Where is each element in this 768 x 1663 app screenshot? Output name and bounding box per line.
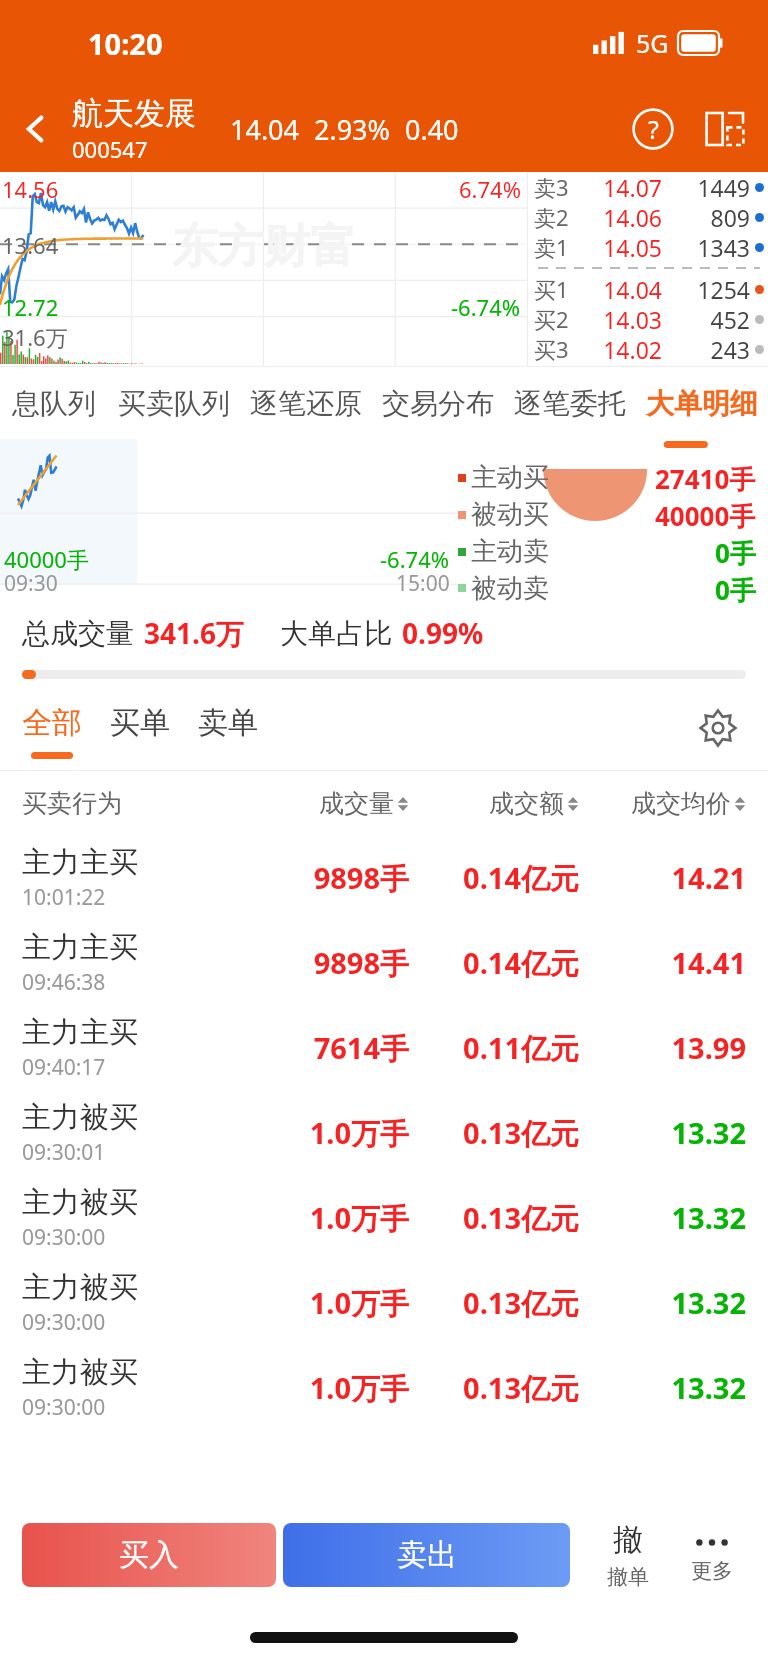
button[interactable]: 主力被买 bbox=[0, 1260, 768, 1345]
staticText: 撤单 bbox=[607, 1564, 649, 1590]
staticText: 9898手 bbox=[239, 943, 409, 983]
staticText: 主力主买 bbox=[22, 929, 138, 966]
button[interactable]: 卖单 bbox=[198, 686, 258, 770]
staticText: 0.13亿元 bbox=[409, 1198, 579, 1238]
button[interactable]: 逐笔还原 bbox=[240, 367, 372, 439]
staticText: 大单占比 bbox=[280, 616, 392, 651]
button[interactable]: Layout bbox=[694, 98, 756, 160]
staticText: 成交量 bbox=[319, 788, 394, 819]
button[interactable]: 买入 bbox=[22, 1523, 276, 1587]
button[interactable]: 卖1 bbox=[534, 232, 764, 262]
staticText: ? bbox=[648, 112, 659, 146]
button[interactable]: 主力被买 bbox=[0, 1175, 768, 1260]
staticText: 14.07 bbox=[586, 172, 662, 202]
button[interactable]: 息队列 bbox=[0, 367, 108, 439]
staticText: 6.74% bbox=[459, 174, 521, 204]
staticText: 09:30:01 bbox=[22, 1138, 106, 1167]
staticText: 逐笔委托 bbox=[514, 386, 626, 421]
staticText: 15:00 bbox=[396, 569, 450, 598]
staticText: 0手 bbox=[715, 535, 756, 568]
staticText: 452 bbox=[662, 304, 750, 334]
button[interactable]: 卖出 bbox=[283, 1523, 570, 1587]
staticText: 主力被买 bbox=[22, 1269, 138, 1306]
staticText: 被动买 bbox=[471, 498, 549, 531]
button[interactable]: 卖3 bbox=[534, 172, 764, 202]
staticText: 13.32 bbox=[579, 1113, 746, 1152]
button[interactable]: Help bbox=[622, 98, 684, 160]
button[interactable]: 买卖队列 bbox=[108, 367, 240, 439]
staticText: 1.0万手 bbox=[239, 1283, 409, 1323]
staticText: 0.99% bbox=[402, 614, 484, 652]
staticText: 243 bbox=[662, 334, 750, 364]
button[interactable]: 更多 bbox=[670, 1499, 754, 1611]
staticText: 被动卖 bbox=[471, 572, 549, 604]
staticText: 14.03 bbox=[586, 304, 662, 334]
staticText: 大单明细 bbox=[646, 386, 758, 421]
staticText: -6.74% bbox=[380, 544, 450, 574]
staticText: 09:30:00 bbox=[22, 1308, 106, 1337]
staticText: 09:46:38 bbox=[22, 968, 106, 997]
staticText: 0.13亿元 bbox=[409, 1113, 579, 1153]
button[interactable]: 买1 bbox=[534, 274, 764, 304]
staticText: 14.41 bbox=[579, 943, 746, 982]
button[interactable]: 买2 bbox=[534, 304, 764, 334]
staticText: 交易分布 bbox=[382, 386, 494, 421]
button[interactable]: Back bbox=[0, 86, 72, 172]
staticText: 卖2 bbox=[534, 202, 586, 232]
button[interactable]: 被动卖 bbox=[458, 572, 756, 604]
staticText: 息队列 bbox=[12, 386, 96, 421]
staticText: 主力被买 bbox=[22, 1354, 138, 1391]
staticText: 2.93% bbox=[314, 111, 391, 148]
staticText: 13.99 bbox=[579, 1028, 746, 1067]
button[interactable]: 主力被买 bbox=[0, 1345, 768, 1430]
staticText: 1.0万手 bbox=[239, 1113, 409, 1153]
staticText: 主力被买 bbox=[22, 1099, 138, 1136]
button[interactable]: 成交额 bbox=[409, 788, 579, 819]
button[interactable]: 成交均价 bbox=[579, 788, 746, 819]
staticText: 全部 bbox=[22, 704, 82, 742]
button[interactable]: 买3 bbox=[534, 334, 764, 364]
staticText: 0.13亿元 bbox=[409, 1283, 579, 1323]
button[interactable]: 主力主买 bbox=[0, 920, 768, 1005]
staticText: 13.32 bbox=[579, 1283, 746, 1322]
staticText: 0.14亿元 bbox=[409, 943, 579, 983]
button[interactable]: Settings bbox=[690, 700, 746, 756]
button[interactable]: 卖2 bbox=[534, 202, 764, 232]
staticText: 买3 bbox=[534, 334, 586, 364]
staticText: 13.64 bbox=[2, 230, 59, 260]
staticText: 5G bbox=[636, 26, 669, 60]
staticText: 0.13亿元 bbox=[409, 1368, 579, 1408]
button[interactable]: 被动买 bbox=[458, 498, 756, 531]
button[interactable]: 买单 bbox=[110, 686, 170, 770]
staticText: 买单 bbox=[110, 704, 170, 742]
button[interactable]: 主力主买 bbox=[0, 835, 768, 920]
button[interactable]: 逐笔委托 bbox=[504, 367, 636, 439]
staticText: 主力主买 bbox=[22, 1014, 138, 1051]
staticText: 14.06 bbox=[586, 202, 662, 232]
staticText: 卖出 bbox=[397, 1536, 457, 1574]
staticText: 1449 bbox=[662, 172, 750, 202]
staticText: 13.32 bbox=[579, 1198, 746, 1237]
staticText: 0.40 bbox=[405, 111, 459, 148]
button[interactable]: 交易分布 bbox=[372, 367, 504, 439]
button[interactable]: 主动卖 bbox=[458, 535, 756, 568]
staticText: 14.04 bbox=[230, 111, 300, 148]
staticText: 卖1 bbox=[534, 232, 586, 262]
staticText: 14.04 bbox=[586, 274, 662, 304]
button[interactable]: 大单明细 bbox=[636, 367, 768, 439]
staticText: 27410手 bbox=[655, 461, 756, 494]
staticText: 撤 bbox=[613, 1521, 643, 1559]
button[interactable]: 主力主买 bbox=[0, 1005, 768, 1090]
button[interactable]: 主动买 bbox=[458, 461, 756, 494]
button[interactable]: 主力被买 bbox=[0, 1090, 768, 1175]
staticText: 09:30 bbox=[4, 569, 58, 598]
staticText: 809 bbox=[662, 202, 750, 232]
staticText: 1343 bbox=[662, 232, 750, 262]
button[interactable]: 成交量 bbox=[239, 788, 409, 819]
button[interactable]: 撤 bbox=[586, 1499, 670, 1611]
staticText: 主力被买 bbox=[22, 1184, 138, 1221]
staticText: 14.05 bbox=[586, 232, 662, 262]
staticText: 总成交量 bbox=[22, 616, 134, 651]
button[interactable]: 全部 bbox=[22, 686, 82, 770]
staticText: 成交额 bbox=[489, 788, 564, 819]
